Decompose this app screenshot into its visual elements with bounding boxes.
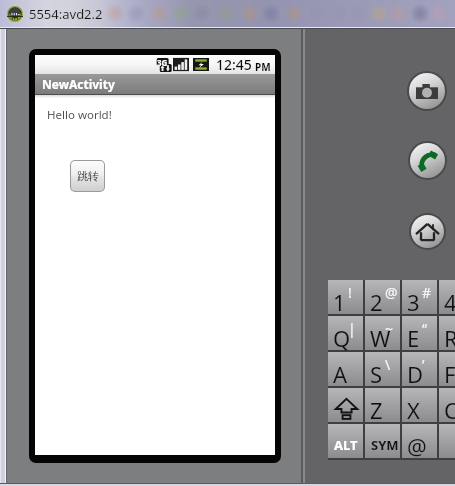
- button[interactable]: 跳转: [71, 161, 104, 191]
- staticText: “: [422, 319, 428, 338]
- staticText: Hello world!: [47, 107, 112, 123]
- staticText: C: [444, 395, 455, 425]
- button[interactable]: 4: [439, 280, 455, 314]
- staticText: ALT: [334, 436, 358, 454]
- button[interactable]: 2: [365, 280, 400, 314]
- staticText: \: [385, 355, 391, 374]
- button[interactable]: 3: [402, 280, 437, 314]
- staticText: Z: [370, 395, 383, 425]
- button[interactable]: X: [402, 388, 437, 422]
- button[interactable]: C: [439, 388, 455, 422]
- staticText: @: [407, 431, 427, 461]
- staticText: @: [385, 283, 398, 302]
- button[interactable]: A: [328, 352, 363, 386]
- staticText: 12:45: [216, 55, 252, 74]
- button[interactable]: R: [439, 316, 455, 350]
- button[interactable]: 1: [328, 280, 363, 314]
- button[interactable]: [439, 424, 455, 458]
- staticText: 5554:avd2.2: [29, 5, 103, 23]
- staticText: F: [444, 359, 455, 389]
- button[interactable]: Home: [411, 215, 444, 248]
- button[interactable]: W: [365, 316, 400, 350]
- staticText: R: [444, 323, 455, 353]
- button[interactable]: Call: [410, 143, 445, 178]
- staticText: !: [348, 283, 352, 302]
- staticText: #: [422, 283, 432, 302]
- button[interactable]: E: [402, 316, 437, 350]
- staticText: NewActivity: [42, 76, 115, 92]
- staticText: 2: [370, 287, 383, 317]
- staticText: |: [348, 319, 356, 338]
- button[interactable]: Q: [328, 316, 363, 350]
- button[interactable]: SYM: [365, 424, 400, 458]
- staticText: D: [407, 359, 424, 389]
- button[interactable]: F: [439, 352, 455, 386]
- staticText: Q: [333, 323, 351, 353]
- button[interactable]: @: [402, 424, 437, 458]
- button[interactable]: S: [365, 352, 400, 386]
- staticText: 跳转: [77, 169, 99, 183]
- button[interactable]: ALT: [328, 424, 363, 458]
- staticText: PM: [255, 60, 271, 74]
- button[interactable]: [328, 388, 363, 422]
- staticText: 3G: [157, 57, 168, 68]
- staticText: ’: [422, 355, 425, 374]
- staticText: E: [407, 323, 420, 353]
- staticText: 3: [407, 287, 420, 317]
- button[interactable]: Z: [365, 388, 400, 422]
- staticText: 1: [333, 287, 346, 317]
- staticText: 4: [444, 287, 455, 317]
- staticText: X: [407, 395, 420, 425]
- staticText: W: [370, 323, 391, 353]
- staticText: A: [333, 359, 348, 389]
- staticText: S: [370, 359, 383, 389]
- button[interactable]: Camera: [409, 73, 445, 109]
- staticText: ~: [385, 319, 394, 338]
- button[interactable]: D: [402, 352, 437, 386]
- staticText: SYM: [371, 436, 399, 454]
